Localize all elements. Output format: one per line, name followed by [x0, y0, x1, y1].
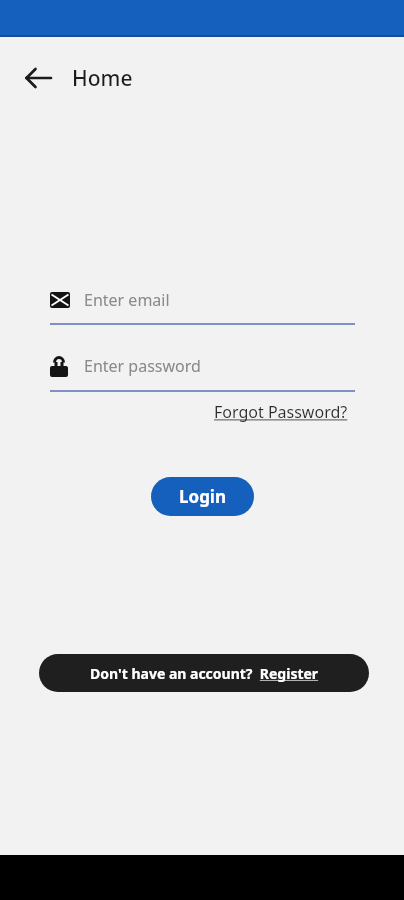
button[interactable]: Login — [151, 477, 254, 516]
staticText: Don't have an account? Register — [90, 664, 319, 683]
button[interactable]: Enter password — [50, 355, 201, 377]
button[interactable] — [26, 58, 66, 98]
button[interactable]: Don't have an account? Register — [39, 654, 369, 692]
staticText: Enter email — [84, 289, 170, 311]
staticText: Login — [179, 485, 227, 508]
staticText: Enter password — [84, 355, 201, 377]
button[interactable]: Forgot Password? — [214, 401, 348, 423]
button[interactable]: Enter email — [50, 289, 170, 311]
staticText: Home — [72, 64, 133, 93]
